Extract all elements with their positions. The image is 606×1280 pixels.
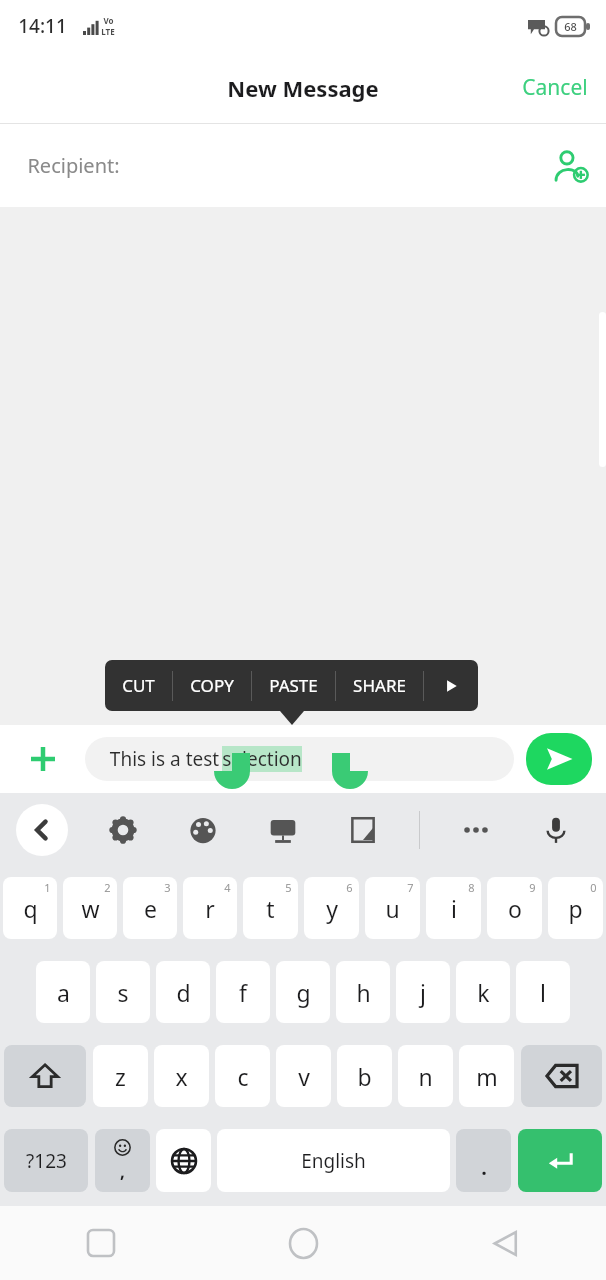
button[interactable]: Cancel (504, 61, 606, 114)
staticText: p (568, 893, 583, 924)
staticText: 68 (564, 19, 577, 34)
button[interactable]: g (276, 961, 330, 1023)
button[interactable]: Theme (179, 806, 227, 854)
button[interactable]: Home (202, 1206, 404, 1280)
button[interactable]: More options (424, 660, 478, 711)
button[interactable]: h (336, 961, 390, 1023)
staticText: v (298, 1061, 310, 1092)
staticText: 1 (44, 880, 51, 895)
staticText: c (237, 1061, 249, 1092)
button[interactable]: f (216, 961, 270, 1023)
button[interactable]: . (456, 1129, 511, 1192)
staticText: y (326, 893, 338, 924)
button[interactable]: Add attachment (0, 725, 85, 793)
button[interactable]: q (3, 877, 57, 939)
button[interactable]: w (63, 877, 117, 939)
button[interactable]: Backspace (521, 1045, 602, 1107)
button[interactable]: n (398, 1045, 453, 1107)
button[interactable]: Enter (518, 1129, 602, 1192)
button[interactable]: x (154, 1045, 209, 1107)
staticText: SHARE (353, 674, 406, 697)
button[interactable]: Handwriting (339, 806, 387, 854)
staticText: l (540, 977, 546, 1008)
button[interactable]: Keyboard layout (259, 806, 307, 854)
button[interactable]: l (516, 961, 570, 1023)
staticText: r (205, 893, 215, 924)
button[interactable]: p (548, 877, 603, 939)
button[interactable]: v (276, 1045, 331, 1107)
button[interactable]: c (215, 1045, 270, 1107)
staticText: New Message (227, 73, 379, 103)
staticText: b (357, 1061, 372, 1092)
staticText: English (301, 1148, 366, 1174)
button[interactable]: j (396, 961, 450, 1023)
button[interactable]: o (487, 877, 542, 939)
staticText: t (266, 893, 275, 924)
staticText: 0 (590, 880, 597, 895)
staticText: 2 (104, 880, 111, 895)
button[interactable]: Back (16, 804, 68, 856)
button[interactable]: CUT (105, 660, 172, 711)
staticText: j (420, 977, 426, 1008)
button[interactable]: Add contact (536, 139, 606, 193)
button[interactable]: Shift (4, 1045, 86, 1107)
button[interactable]: Voice input (532, 806, 580, 854)
staticText: COPY (190, 674, 234, 697)
staticText: PASTE (269, 674, 318, 697)
staticText: ?123 (26, 1148, 67, 1174)
staticText: x (175, 1061, 188, 1092)
button[interactable]: s (96, 961, 150, 1023)
button[interactable]: More (452, 806, 500, 854)
button[interactable]: u (365, 877, 420, 939)
staticText: Vo (103, 15, 114, 26)
staticText: 5 (285, 880, 292, 895)
button[interactable]: k (456, 961, 510, 1023)
button[interactable]: b (337, 1045, 392, 1107)
button[interactable]: z (93, 1045, 148, 1107)
button[interactable]: Change language (156, 1129, 211, 1192)
button[interactable]: ?123 (4, 1129, 88, 1192)
staticText: 9 (529, 880, 536, 895)
staticText: This is a test (107, 746, 222, 772)
staticText: . (481, 1154, 487, 1181)
button[interactable]: r (183, 877, 237, 939)
staticText: z (115, 1061, 126, 1092)
button[interactable]: d (156, 961, 210, 1023)
button[interactable]: e (123, 877, 177, 939)
staticText: k (477, 977, 490, 1008)
button[interactable]: y (304, 877, 359, 939)
button[interactable]: Send (526, 733, 592, 785)
staticText: Cancel (522, 73, 588, 102)
staticText: 4 (224, 880, 231, 895)
button[interactable]: Back (404, 1206, 606, 1280)
staticText: a (57, 977, 70, 1008)
staticText: 14:11 (18, 13, 67, 39)
button[interactable]: PASTE (252, 660, 335, 711)
button[interactable]: a (36, 961, 90, 1023)
staticText: e (144, 893, 157, 924)
staticText: 7 (407, 880, 414, 895)
staticText: LTE (101, 26, 115, 37)
staticText: 8 (468, 880, 475, 895)
button[interactable]: SHARE (336, 660, 423, 711)
staticText: o (508, 893, 522, 924)
staticText: 6 (346, 880, 353, 895)
staticText: d (176, 977, 191, 1008)
button[interactable]: m (459, 1045, 514, 1107)
staticText: selection (222, 746, 302, 772)
button[interactable]: i (426, 877, 481, 939)
staticText: u (385, 893, 400, 924)
staticText: Recipient: (27, 152, 120, 179)
button[interactable]: Emoji and comma (95, 1129, 150, 1192)
button[interactable]: English (217, 1129, 450, 1192)
button[interactable]: This is a test (85, 737, 514, 781)
staticText: h (356, 977, 371, 1008)
button[interactable]: Settings (99, 806, 147, 854)
button[interactable]: COPY (173, 660, 251, 711)
staticText: n (418, 1061, 433, 1092)
staticText: q (23, 893, 38, 924)
button[interactable]: t (243, 877, 298, 939)
staticText: , (120, 1160, 125, 1183)
staticText: CUT (122, 674, 155, 697)
button[interactable]: Recent apps (0, 1206, 202, 1280)
